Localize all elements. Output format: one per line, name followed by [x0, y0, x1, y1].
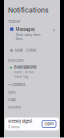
staticText: ›	[53, 27, 55, 33]
staticText: New reply from Sam	[15, 33, 40, 41]
staticText: view log	[14, 74, 28, 78]
staticText: TODAY	[8, 19, 21, 24]
staticText: Messages	[15, 27, 34, 32]
staticText: Build passed	[14, 65, 36, 69]
staticText: Open	[44, 122, 53, 126]
staticText: 3 items	[8, 125, 20, 129]
staticText: main · 4 min	[14, 70, 34, 74]
staticText: Notifications	[8, 6, 49, 14]
button[interactable]: Open	[42, 120, 56, 127]
staticText: Archive	[8, 105, 21, 109]
staticText: Mail · 2 new	[15, 48, 36, 53]
staticText: Sync	[8, 90, 16, 94]
staticText: EARLIER	[8, 58, 24, 63]
staticText: Logs	[8, 97, 16, 102]
staticText: • Updated	[8, 82, 25, 87]
staticText: Weekly digest	[8, 119, 32, 124]
